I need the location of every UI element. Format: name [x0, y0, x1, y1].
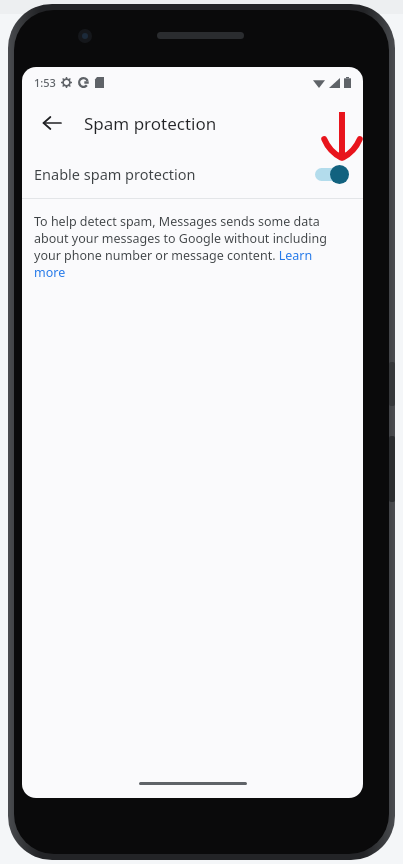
button[interactable]: Enable spam protection: [22, 149, 363, 198]
staticText: 1:53: [34, 75, 56, 90]
button[interactable]: Enable spam protection toggle: [313, 163, 349, 185]
staticText: Enable spam protection: [34, 164, 196, 184]
staticText: Spam protection: [84, 112, 217, 135]
button[interactable]: Back: [32, 103, 72, 143]
staticText: To help detect spam, Messages sends some…: [34, 213, 343, 281]
